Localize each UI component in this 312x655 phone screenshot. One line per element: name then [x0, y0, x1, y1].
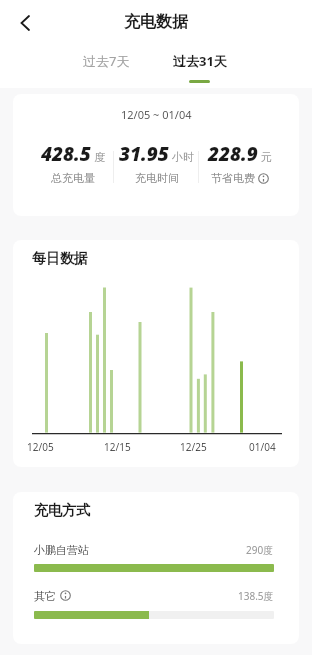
staticText: 12/25 [180, 440, 207, 454]
staticText: 138.5度 [238, 589, 274, 603]
staticText: 过去31天 [173, 52, 227, 70]
staticText: 小鹏自营站 [34, 543, 89, 557]
staticText: 度 [94, 150, 105, 164]
staticText: 01/04 [249, 440, 276, 454]
staticText: 428.5 [41, 141, 91, 167]
staticText: 其它 [34, 589, 56, 603]
staticText: 小时 [172, 150, 194, 164]
staticText: 充电数据 [124, 12, 188, 32]
staticText: 总充电量 [51, 171, 95, 185]
staticText: 12/05 ~ 01/04 [121, 107, 192, 122]
staticText: 充电时间 [135, 171, 179, 185]
staticText: 12/15 [104, 440, 131, 454]
staticText: 每日数据 [32, 250, 88, 268]
staticText: 290度 [246, 543, 274, 557]
staticText: 过去7天 [83, 52, 130, 70]
staticText: 228.9 [208, 141, 258, 167]
staticText: 元 [261, 150, 272, 164]
staticText: 充电方式 [34, 502, 90, 520]
staticText: 12/05 [27, 440, 54, 454]
staticText: 31.95 [119, 141, 169, 167]
staticText: 节省电费 [211, 171, 255, 185]
